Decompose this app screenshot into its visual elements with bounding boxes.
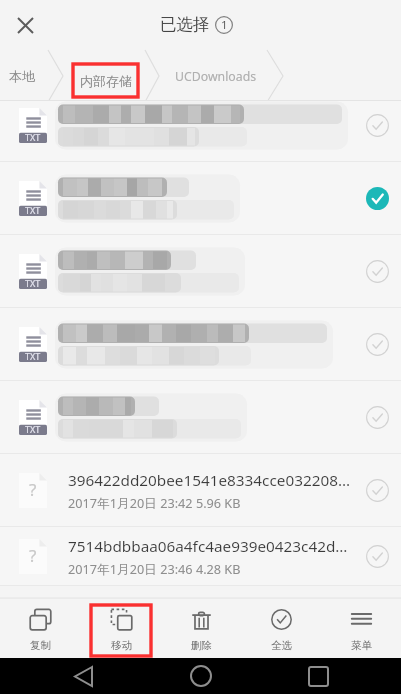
button[interactable]: 内部存储 (73, 64, 138, 97)
button[interactable]: 本地 (9, 68, 35, 84)
button[interactable]: ? (0, 527, 401, 586)
button[interactable]: Home (166, 658, 236, 694)
button[interactable]: Close (0, 0, 50, 50)
staticText: 2017年1月20日 23:42 5.96 KB (68, 494, 241, 511)
button[interactable]: 删除 (161, 598, 241, 658)
staticText: 1 (221, 17, 228, 33)
staticText: TXT (25, 204, 41, 216)
button[interactable]: TXT (0, 235, 401, 308)
staticText: TXT (25, 423, 41, 435)
staticText: 移动 (111, 639, 132, 652)
button[interactable]: 移动 (81, 598, 161, 658)
button[interactable]: TXT (0, 308, 401, 381)
staticText: ? (29, 544, 37, 567)
staticText: 已选择 (160, 14, 210, 35)
button[interactable]: TXT (0, 162, 401, 235)
button[interactable]: 菜单 (321, 598, 401, 658)
button[interactable]: UCDownloads (175, 68, 257, 85)
staticText: ? (29, 478, 37, 501)
button[interactable]: TXT (0, 381, 401, 454)
staticText: 全选 (271, 639, 292, 652)
staticText: TXT (25, 131, 41, 143)
button[interactable]: TXT (0, 101, 401, 162)
staticText: 396422dd20bee1541e8334cce032208… (68, 470, 351, 491)
button[interactable]: Recents (283, 658, 353, 694)
button[interactable]: Back (48, 658, 118, 694)
staticText: 菜单 (351, 639, 372, 652)
button[interactable]: ? (0, 454, 401, 527)
staticText: 内部存储 (80, 73, 132, 89)
staticText: 2017年1月20日 23:46 4.28 KB (68, 560, 241, 577)
staticText: 复制 (30, 639, 51, 652)
staticText: 删除 (191, 639, 212, 652)
button[interactable]: 全选 (241, 598, 321, 658)
staticText: TXT (25, 350, 41, 362)
staticText: 7514bdbbaa06a4fc4ae939e0423c42d… (68, 536, 348, 557)
staticText: TXT (25, 277, 41, 289)
button[interactable]: 复制 (0, 598, 81, 658)
